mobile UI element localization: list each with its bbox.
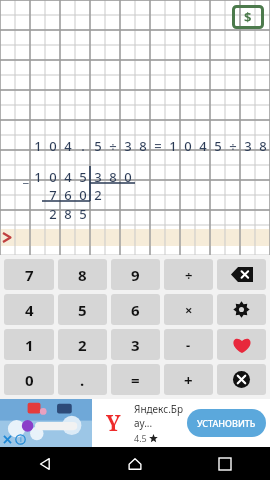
staticText: 4 [64,168,72,185]
button[interactable]: Ad info [15,434,26,445]
staticText: 8 [139,137,147,153]
staticText: - [186,336,191,354]
button[interactable]: ÷ [164,259,213,290]
button[interactable]: 0 [4,364,54,395]
staticText: 7 [49,186,57,203]
button[interactable]: 4 [4,294,54,325]
staticText: 5 [79,168,87,185]
button[interactable]: Recents [180,447,270,480]
button[interactable]: - [164,329,213,360]
staticText: 8 [259,137,267,153]
staticText: 0 [49,137,57,153]
staticText: 7 [25,265,34,285]
staticText: 8 [78,265,87,285]
staticText: ÷ [229,137,237,153]
button[interactable]: 3 [111,329,160,360]
button[interactable]: Home [90,447,180,480]
staticText: Y [106,409,121,438]
staticText: 8 [64,205,72,222]
button[interactable]: Favorite [217,329,266,360]
staticText: × [185,301,193,319]
staticText: 5 [94,137,102,153]
button[interactable]: Clear [217,364,266,395]
staticText: 0 [25,370,34,390]
button[interactable]: = [111,364,160,395]
button[interactable]: + [164,364,213,395]
staticText: 3 [244,137,252,153]
button[interactable]: 7 [4,259,54,290]
button[interactable]: Close ad [0,399,270,447]
button[interactable]: Close ad [2,434,13,445]
button[interactable]: 9 [111,259,160,290]
staticText: 4 [199,137,207,153]
staticText: 3 [124,137,132,153]
button[interactable]: УСТАНОВИТЬ [187,409,266,437]
staticText: 2 [49,205,57,222]
staticText: 3 [94,168,102,185]
staticText: 0 [49,168,57,185]
staticText: ÷ [185,266,193,284]
staticText: УСТАНОВИТЬ [197,417,256,429]
staticText: 2 [78,335,87,355]
button[interactable]: Settings [217,294,266,325]
staticText: 0 [124,168,132,185]
staticText: 4.5 [134,432,147,444]
staticText: 5 [79,205,87,222]
staticText: 5 [214,137,222,153]
button[interactable]: Remove ads [232,5,264,29]
button[interactable]: 5 [58,294,107,325]
button[interactable]: 1 [4,329,54,360]
staticText: 1 [169,137,177,153]
button[interactable]: 6 [111,294,160,325]
staticText: 0 [79,186,87,203]
staticText: . [80,370,85,390]
staticText: 3 [131,335,140,355]
staticText: 0 [184,137,192,153]
button[interactable]: × [164,294,213,325]
staticText: Яндекс.Брау... [134,402,187,430]
staticText: 1 [25,335,34,355]
staticText: 9 [131,265,140,285]
staticText: = [154,137,162,153]
staticText: i [20,435,22,445]
staticText: _ [23,168,29,184]
button[interactable]: Backspace [217,259,266,290]
staticText: = [131,370,140,390]
staticText: $ [244,8,252,26]
button[interactable]: . [58,364,107,395]
button[interactable]: Back [0,447,90,480]
staticText: 1 [34,168,42,185]
staticText: 8 [109,168,117,185]
staticText: 6 [64,186,72,203]
staticText: + [184,370,193,390]
button[interactable]: 2 [58,329,107,360]
staticText: 2 [94,186,102,203]
staticText: ÷ [109,137,117,153]
staticText: 1 [34,137,42,153]
button[interactable]: 8 [58,259,107,290]
staticText: 5 [78,300,87,320]
staticText: 6 [131,300,140,320]
staticText: 4 [25,300,34,320]
staticText: 4 [64,137,72,153]
staticText: . [81,137,85,153]
